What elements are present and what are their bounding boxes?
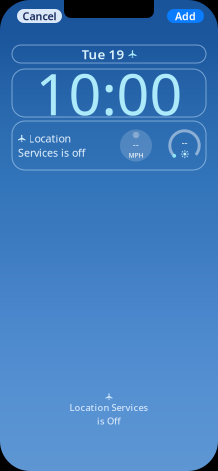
staticText: Location Services bbox=[69, 401, 148, 414]
staticText: is Off bbox=[97, 415, 121, 427]
button[interactable]: Add bbox=[167, 9, 204, 23]
staticText: Services is off bbox=[18, 145, 85, 160]
staticText: -- bbox=[133, 139, 139, 150]
staticText: 10:00 bbox=[35, 55, 182, 131]
button[interactable]: 10:00 bbox=[12, 69, 206, 117]
button[interactable]: Cancel bbox=[17, 9, 62, 23]
staticText: Add bbox=[175, 9, 196, 23]
button[interactable]: Tue 19 bbox=[12, 45, 206, 63]
staticText: MPH bbox=[128, 151, 143, 160]
button[interactable]: Location bbox=[12, 121, 206, 170]
staticText: Location bbox=[28, 131, 71, 145]
staticText: -- bbox=[181, 136, 187, 149]
staticText: Tue 19 bbox=[81, 45, 124, 63]
staticText: Cancel bbox=[22, 9, 56, 23]
